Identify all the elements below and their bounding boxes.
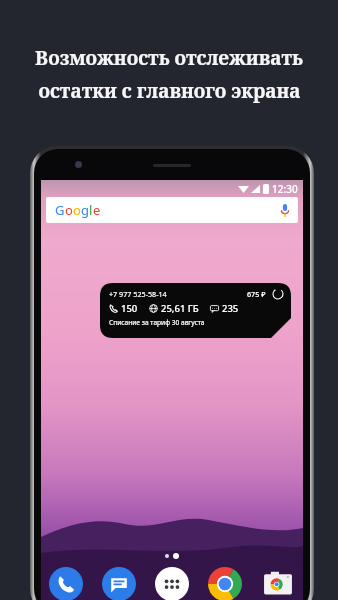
- button[interactable]: All apps: [155, 567, 189, 600]
- button[interactable]: G: [46, 197, 298, 223]
- button[interactable]: Chrome: [208, 567, 242, 600]
- other: Voice search: [281, 204, 289, 217]
- button[interactable]: Phone: [49, 567, 83, 600]
- other: Refresh: [273, 289, 283, 299]
- staticText: l: [89, 201, 93, 219]
- button[interactable]: Messages: [102, 567, 136, 600]
- staticText: 150: [121, 302, 138, 315]
- staticText: e: [93, 201, 101, 219]
- staticText: o: [65, 201, 73, 219]
- staticText: остатки с главного экрана: [38, 78, 301, 104]
- staticText: 675 ₽: [247, 289, 266, 299]
- staticText: Возможность отслеживать: [35, 45, 303, 71]
- staticText: 25,61 ГБ: [161, 302, 199, 315]
- staticText: 12:30: [272, 182, 298, 196]
- staticText: G: [55, 201, 65, 219]
- staticText: +7 977 525-58-14: [109, 289, 167, 299]
- button[interactable]: +7 977 525-58-14: [100, 283, 291, 338]
- staticText: Списание за тариф 30 августа: [109, 318, 205, 327]
- staticText: 235: [222, 302, 239, 315]
- staticText: o: [73, 201, 81, 219]
- button[interactable]: Camera: [261, 567, 295, 600]
- staticText: g: [81, 201, 89, 219]
